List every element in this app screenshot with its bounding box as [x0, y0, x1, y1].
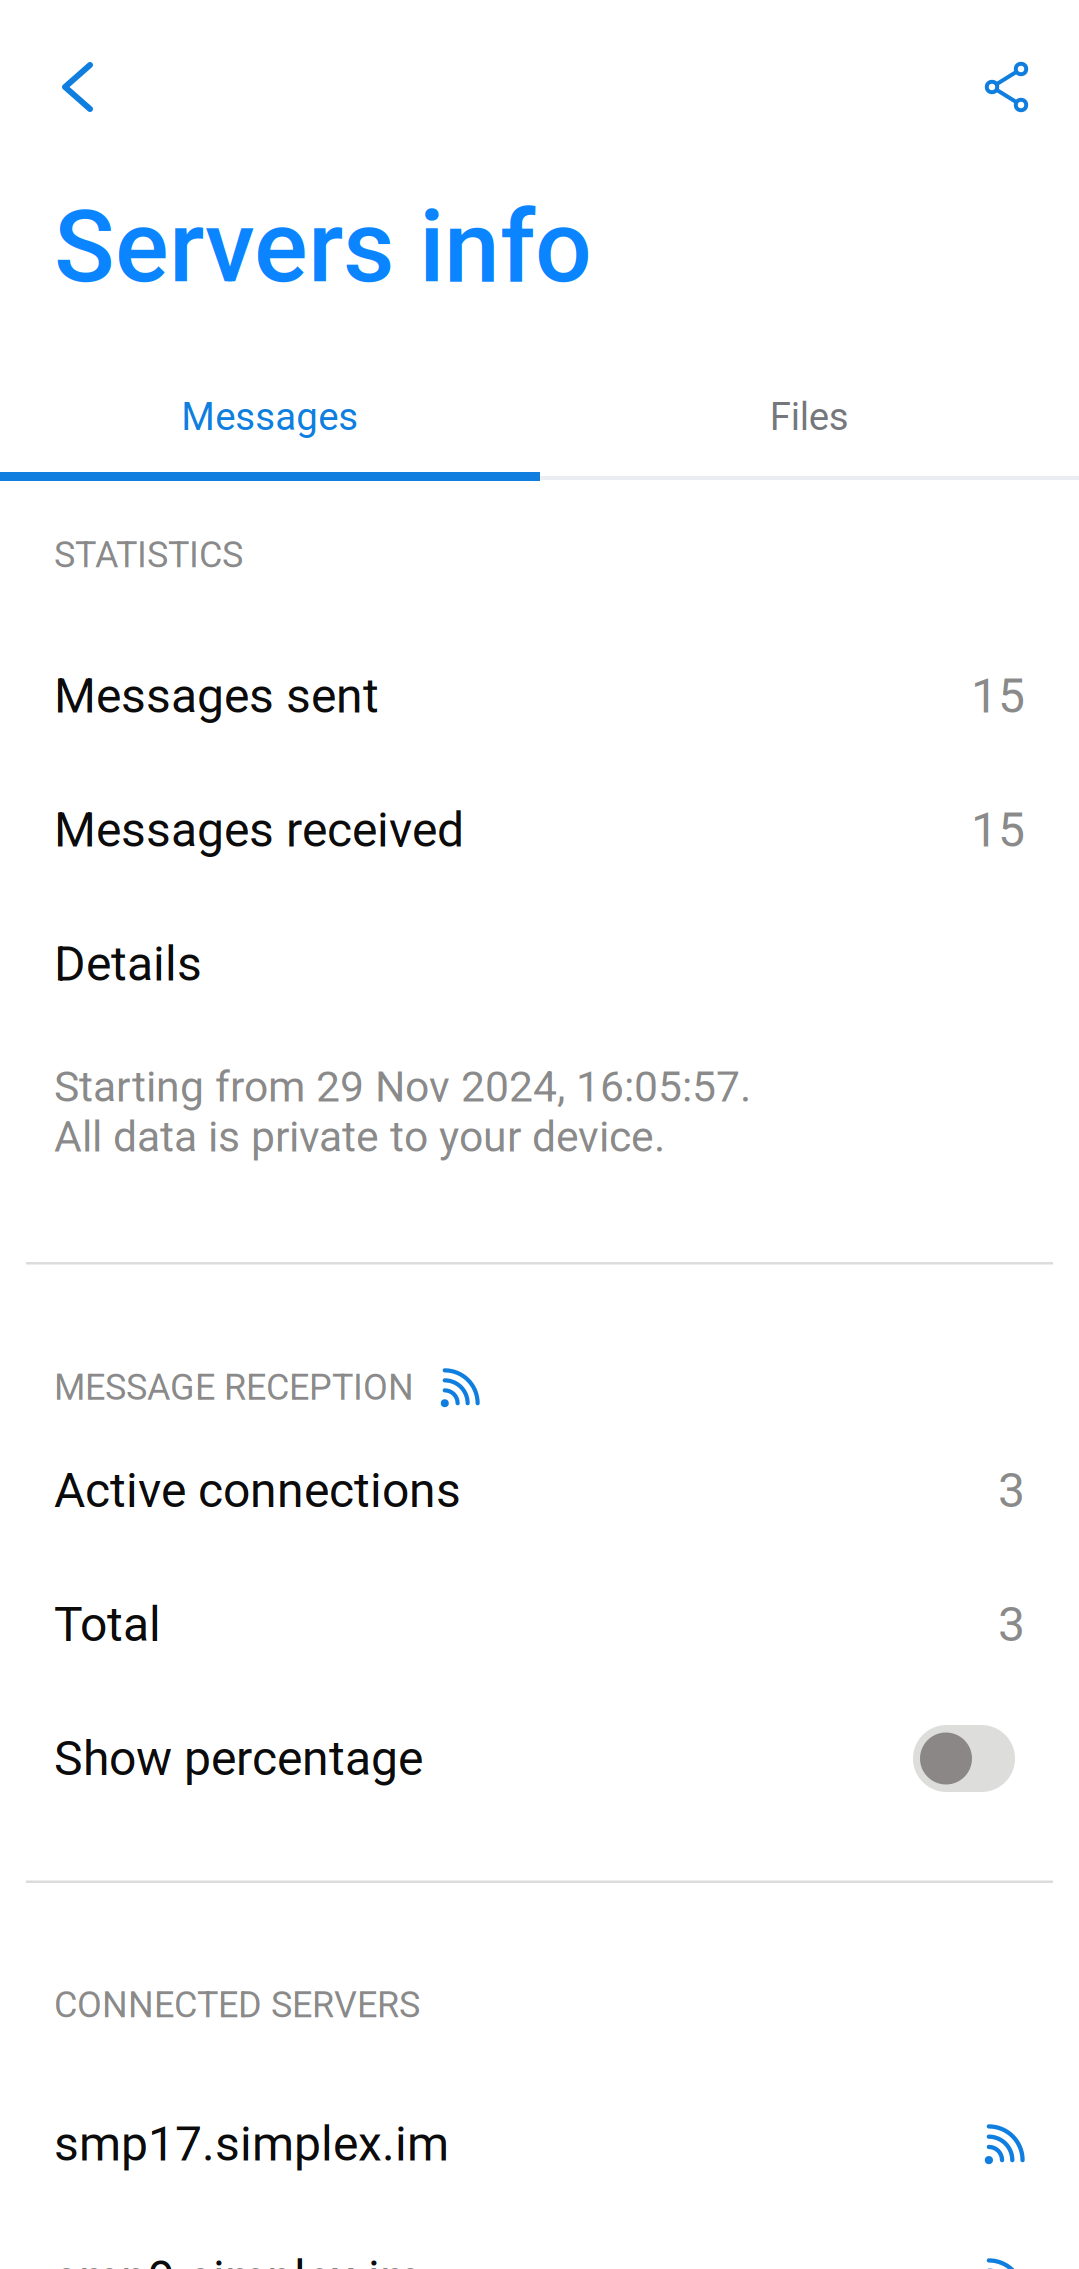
button[interactable]: Messages sent	[0, 629, 1079, 763]
staticText: STATISTICS	[54, 534, 243, 576]
staticText: Show percentage	[54, 1730, 423, 1787]
staticText: Messages	[181, 394, 358, 439]
staticText: 15	[971, 668, 1025, 724]
button[interactable]: smp9.simplex.im	[0, 2211, 1079, 2269]
staticText: Active connections	[54, 1462, 461, 1519]
button[interactable]: Active connections	[0, 1423, 1079, 1557]
staticText: Messages received	[54, 802, 464, 858]
staticText: Messages sent	[54, 668, 379, 724]
button[interactable]: Share	[952, 26, 1079, 148]
button[interactable]: Show percentage	[0, 1691, 1079, 1825]
staticText: CONNECTED SERVERS	[54, 1984, 420, 2026]
staticText: MESSAGE RECEPTION	[54, 1366, 414, 1409]
button[interactable]: Files	[539, 367, 1079, 467]
button[interactable]: Total	[0, 1557, 1079, 1691]
staticText: 3	[998, 1596, 1025, 1653]
button[interactable]: Messages received	[0, 763, 1079, 897]
button[interactable]: Details	[0, 897, 1079, 1031]
staticText: smp9.simplex.im	[54, 2250, 422, 2269]
staticText: Starting from 29 Nov 2024, 16:05:57. All…	[54, 1062, 751, 1162]
staticText: Details	[54, 936, 202, 992]
staticText: Files	[770, 394, 849, 439]
staticText: 15	[971, 802, 1025, 858]
staticText: Servers info	[54, 188, 592, 306]
staticText: smp17.simplex.im	[54, 2116, 449, 2172]
staticText: 3	[998, 1462, 1025, 1519]
button[interactable]: smp17.simplex.im	[0, 2077, 1079, 2211]
button[interactable]: Messages	[0, 367, 539, 467]
button[interactable]: Back	[0, 26, 122, 148]
staticText: Total	[54, 1596, 161, 1653]
